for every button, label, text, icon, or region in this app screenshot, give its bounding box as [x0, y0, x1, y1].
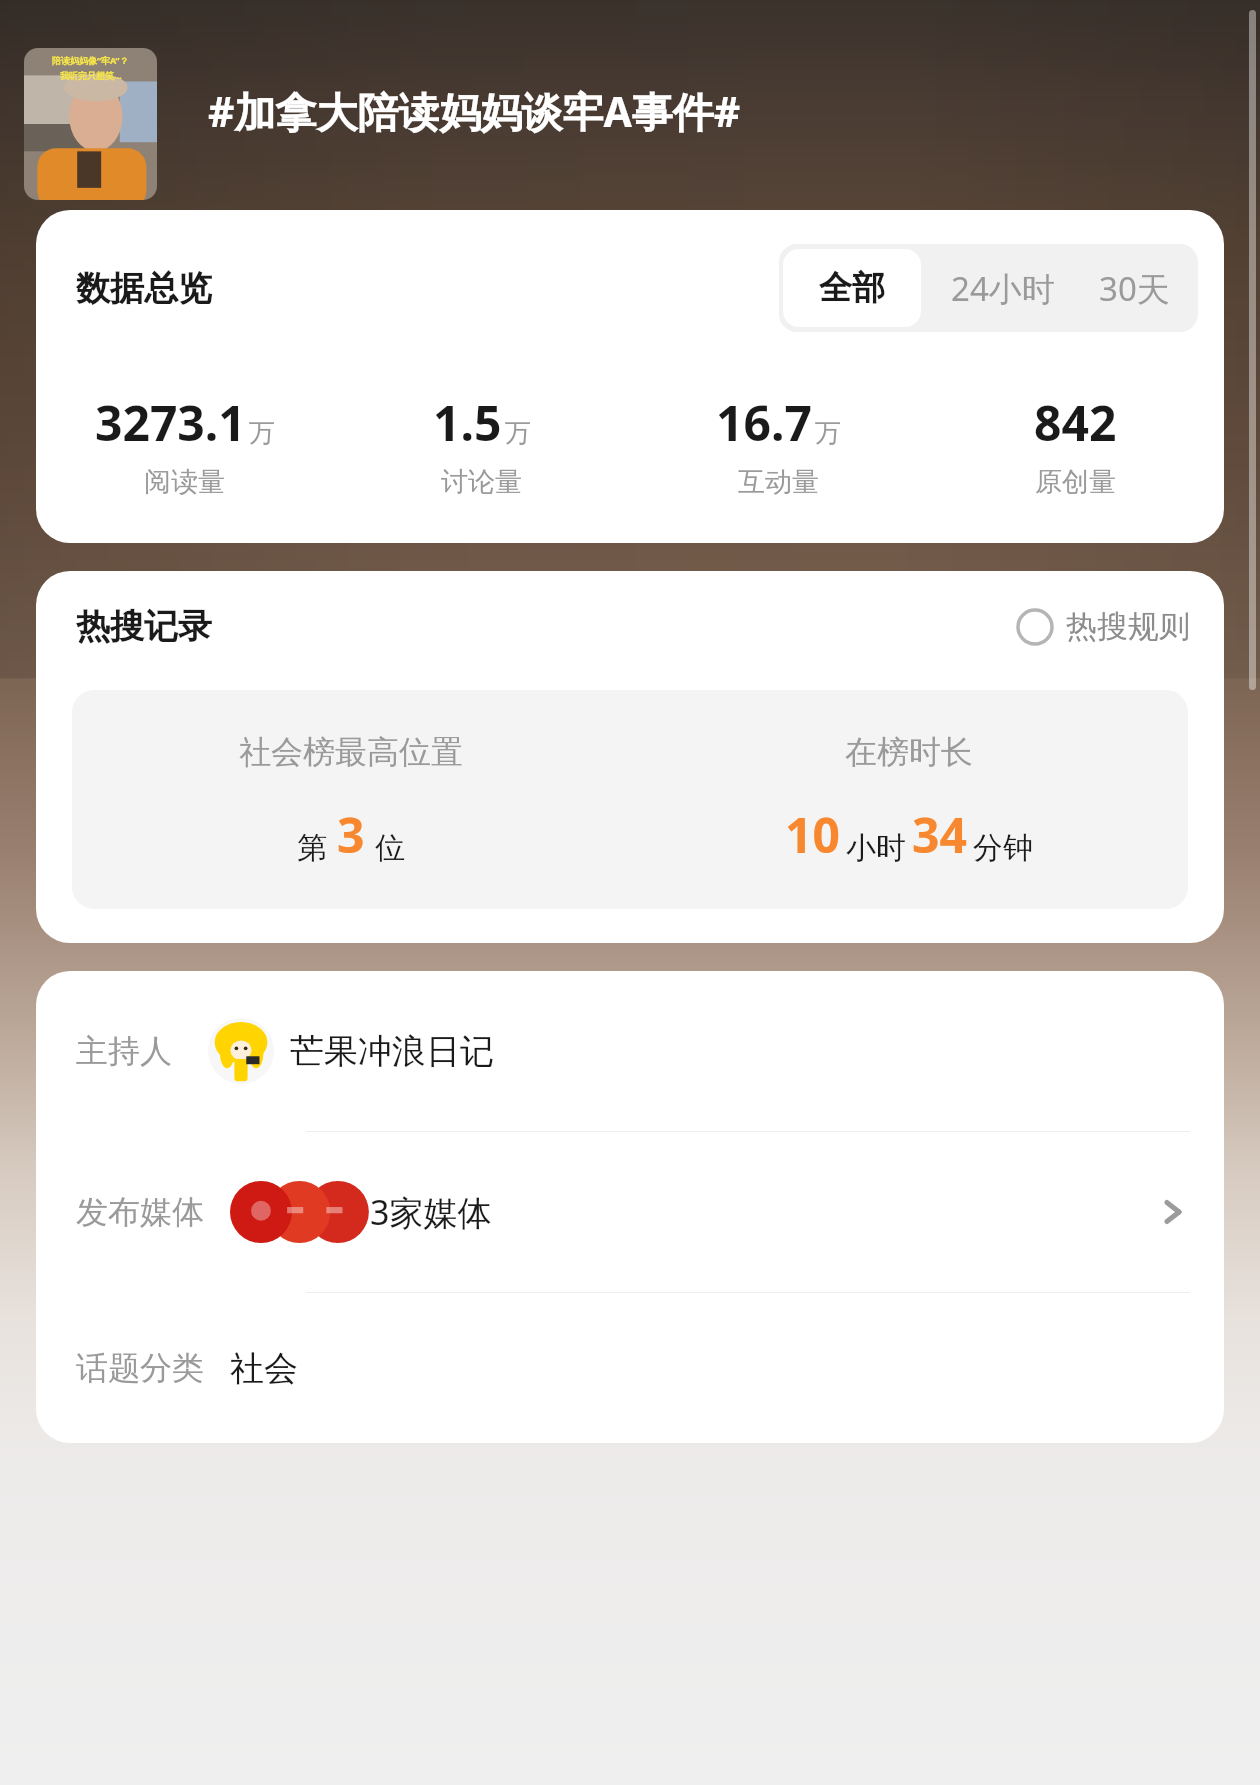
staticText: 842	[1034, 390, 1117, 455]
button[interactable]: 30天	[1081, 246, 1198, 331]
staticText: 芒果冲浪日记	[290, 1030, 494, 1073]
staticText: 原创量	[1035, 465, 1116, 499]
button[interactable]: 全部	[783, 249, 921, 327]
staticText: 万	[815, 417, 841, 450]
staticText: 万	[249, 417, 275, 450]
button[interactable]: Topic video thumbnail	[24, 48, 157, 200]
staticText: 位	[375, 829, 405, 867]
staticText: 1.5	[433, 390, 502, 455]
other: More media	[1156, 1195, 1190, 1229]
staticText: 社会	[230, 1347, 298, 1390]
staticText: 3家媒体	[370, 1189, 492, 1235]
staticText: 16.7	[716, 390, 812, 455]
button[interactable]: 发布媒体	[36, 1132, 1224, 1292]
staticText: 小时	[846, 829, 906, 867]
button[interactable]: 16.7	[630, 390, 927, 499]
staticText: 分钟	[973, 829, 1033, 867]
staticText: 3	[337, 802, 365, 867]
button[interactable]: 主持人	[36, 971, 1224, 1131]
staticText: 在榜时长	[845, 732, 973, 772]
staticText: 全部	[819, 267, 885, 309]
staticText: 讨论量	[441, 465, 522, 499]
staticText: 主持人	[76, 1031, 172, 1071]
staticText: 热搜规则	[1066, 607, 1190, 646]
staticText: 34	[912, 802, 967, 867]
staticText: 10	[785, 802, 840, 867]
staticText: 陪读妈妈像“牢A”？	[52, 54, 129, 66]
staticText: 发布媒体	[76, 1192, 204, 1232]
button[interactable]: 1.5	[333, 390, 630, 499]
staticText: 话题分类	[76, 1348, 204, 1388]
staticText: 30天	[1099, 266, 1170, 311]
staticText: 阅读量	[144, 465, 225, 499]
button[interactable]: 3273.1	[36, 390, 333, 499]
staticText: 热搜记录	[76, 605, 212, 648]
staticText: 数据总览	[76, 267, 212, 310]
button[interactable]: 话题分类	[36, 1293, 1224, 1443]
button[interactable]: 842	[927, 390, 1224, 499]
staticText: 第	[297, 829, 327, 867]
staticText: 24小时	[951, 266, 1055, 311]
staticText: 社会榜最高位置	[239, 732, 463, 772]
staticText: 万	[505, 417, 531, 450]
button[interactable]: 热搜规则	[1016, 607, 1190, 646]
button[interactable]: 24小时	[925, 246, 1081, 331]
staticText: 我听完只想笑…	[60, 69, 122, 81]
staticText: 3273.1	[95, 390, 246, 455]
staticText: #加拿大陪读妈妈谈牢A事件#	[208, 83, 741, 139]
staticText: 互动量	[738, 465, 819, 499]
